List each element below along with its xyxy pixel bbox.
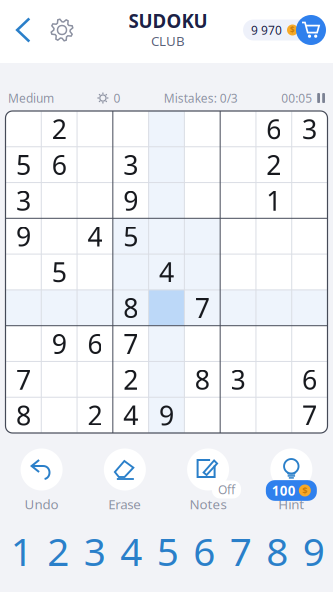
staticText: 3	[231, 362, 246, 397]
staticText: 2	[87, 397, 102, 433]
button[interactable]: Shop	[294, 13, 328, 47]
staticText: $	[302, 484, 307, 497]
staticText: 1	[11, 525, 33, 577]
staticText: 8	[16, 397, 31, 433]
staticText: Undo	[25, 495, 59, 513]
staticText: 3	[123, 147, 138, 182]
button[interactable]: 6	[186, 530, 223, 572]
staticText: 7	[230, 525, 252, 577]
staticText: Hint	[278, 495, 304, 513]
staticText: 0	[113, 90, 120, 106]
staticText: 5	[157, 525, 179, 577]
button[interactable]: Undo	[0, 447, 83, 517]
staticText: 9	[159, 397, 174, 433]
button[interactable]: 9	[296, 530, 332, 572]
staticText: Medium	[8, 90, 54, 106]
staticText: 7	[123, 326, 138, 361]
staticText: 2	[123, 362, 138, 397]
staticText: 2	[47, 525, 69, 577]
button[interactable]: 8	[259, 530, 296, 572]
staticText: 4	[159, 254, 174, 290]
button[interactable]: 2	[40, 530, 77, 572]
staticText: 2	[52, 111, 67, 147]
staticText: 6	[266, 111, 281, 147]
staticText: 4	[123, 397, 138, 433]
button[interactable]: Coins 9970	[243, 19, 311, 40]
button[interactable]: 5	[150, 530, 186, 572]
button[interactable]: 1	[4, 530, 40, 572]
staticText: $	[290, 25, 295, 35]
staticText: 00:05	[281, 90, 312, 106]
staticText: 8	[266, 525, 288, 577]
staticText: 8	[195, 362, 210, 397]
staticText: Erase	[108, 495, 141, 513]
staticText: 6	[52, 147, 67, 182]
staticText: 6	[87, 326, 102, 361]
staticText: 5	[16, 147, 31, 182]
staticText: CLUB	[151, 32, 185, 50]
staticText: 9	[52, 326, 67, 361]
staticText: 3	[84, 525, 106, 577]
staticText: Off	[218, 481, 235, 497]
staticText: 8	[123, 290, 138, 325]
button[interactable]: Notes	[166, 447, 250, 517]
button[interactable]: 4	[113, 530, 150, 572]
staticText: SUDOKU	[128, 8, 207, 33]
button[interactable]: 7	[223, 530, 259, 572]
staticText: 4	[87, 218, 102, 254]
staticText: 5	[123, 218, 138, 254]
staticText: 1	[266, 183, 281, 218]
staticText: 100	[272, 482, 296, 499]
staticText: 3	[302, 111, 317, 147]
staticText: Mistakes: 0/3	[164, 90, 238, 106]
staticText: Notes	[190, 495, 227, 513]
staticText: 7	[16, 362, 31, 397]
staticText: 9 970	[251, 22, 282, 38]
button[interactable]: Hint	[250, 447, 333, 517]
button[interactable]: Back	[3, 8, 43, 52]
staticText: 4	[120, 525, 142, 577]
staticText: 9	[123, 183, 138, 218]
button[interactable]: Erase	[83, 447, 166, 517]
staticText: 9	[16, 218, 31, 254]
button[interactable]: Settings	[43, 9, 81, 51]
staticText: 6	[302, 362, 317, 397]
staticText: 7	[302, 397, 317, 433]
staticText: 7	[195, 290, 210, 325]
button[interactable]: 3	[77, 530, 113, 572]
staticText: 9	[303, 525, 325, 577]
staticText: 6	[193, 525, 215, 577]
staticText: 3	[16, 183, 31, 218]
staticText: 5	[52, 254, 67, 290]
staticText: 2	[266, 147, 281, 182]
